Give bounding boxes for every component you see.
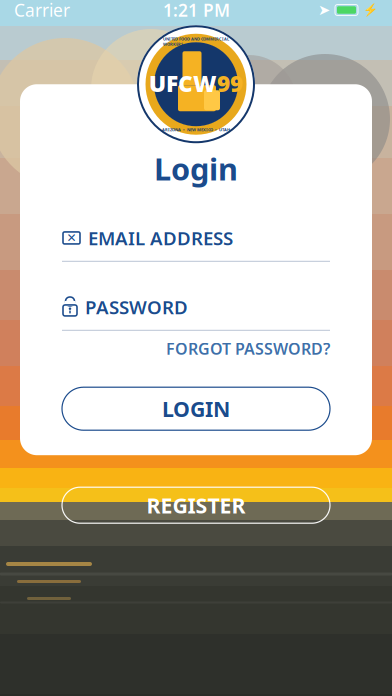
staticText: ➤ (318, 2, 330, 18)
staticText: ✕ (66, 231, 76, 245)
staticText: ⚡ (363, 3, 378, 17)
staticText: REGISTER (146, 491, 245, 519)
staticText: UFCW (149, 68, 217, 98)
staticText: FORGOT PASSWORD? (166, 338, 330, 359)
staticText: 99 (217, 68, 243, 98)
staticText: 1:21 PM (163, 0, 230, 21)
staticText: Login (154, 148, 238, 189)
button[interactable]: REGISTER (62, 487, 330, 523)
staticText: UNITED FOOD AND COMMERCIAL WORKERS (163, 36, 229, 47)
button[interactable]: FORGOT PASSWORD? (166, 338, 330, 359)
staticText: LOGIN (162, 394, 230, 423)
staticText: ARIZONA • NEW MEXICO • UTAH (162, 127, 230, 132)
button[interactable]: LOGIN (62, 387, 330, 430)
staticText: EMAIL ADDRESS (88, 226, 233, 250)
staticText: Carrier (14, 0, 70, 21)
staticText: PASSWORD (85, 295, 188, 319)
